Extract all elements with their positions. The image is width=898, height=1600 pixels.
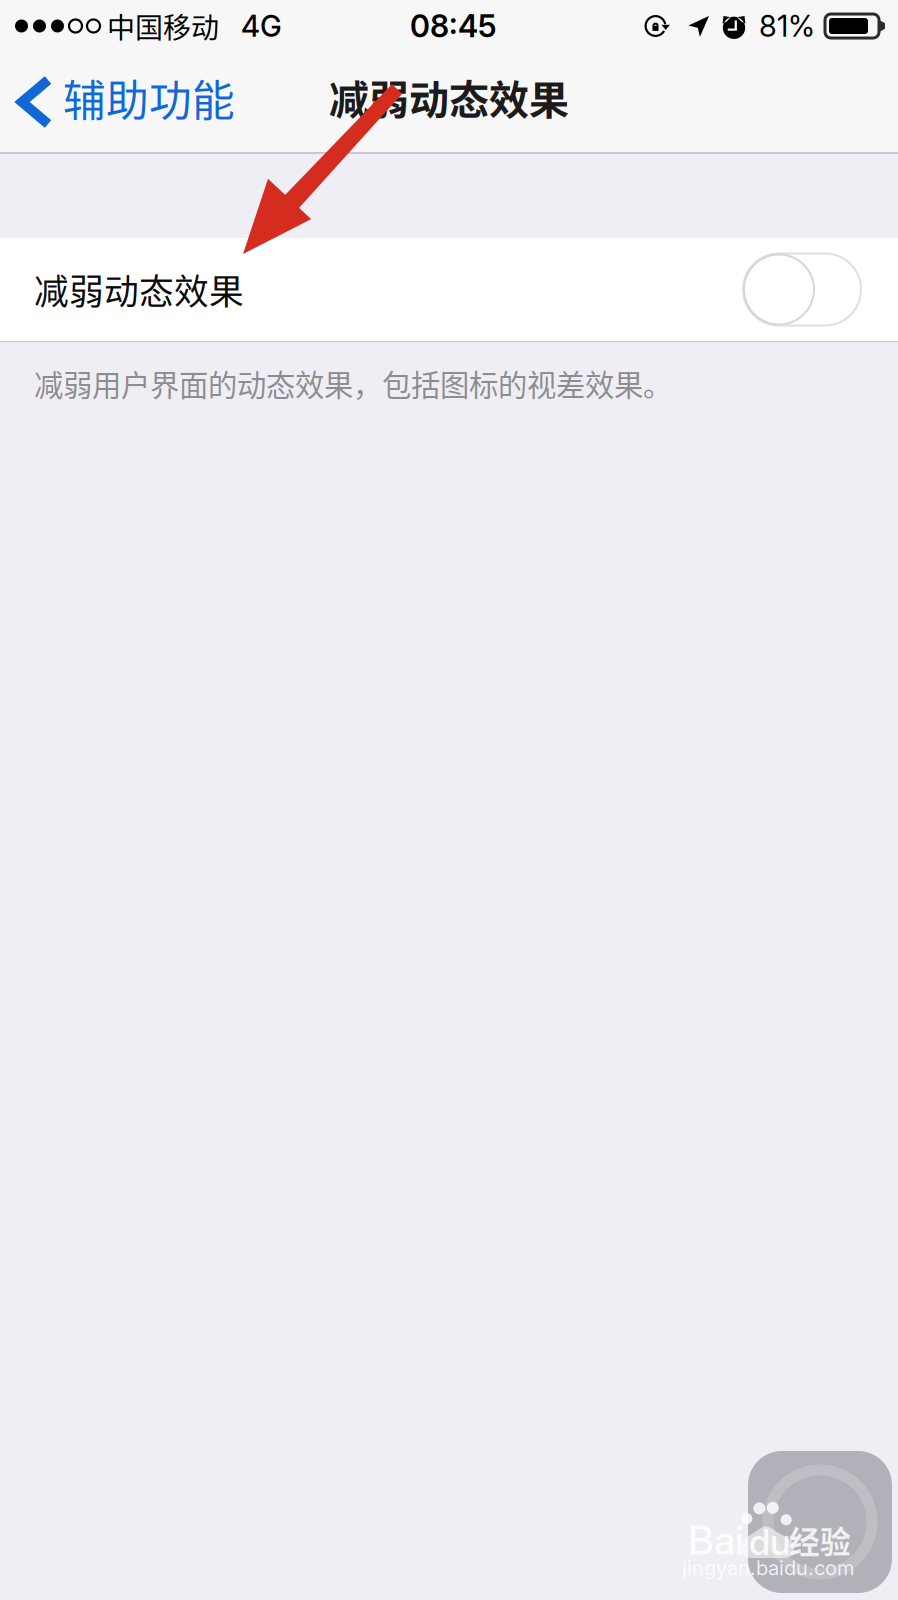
staticText: 经验 [789, 1518, 851, 1562]
button[interactable]: 减弱动态效果 [0, 238, 898, 341]
staticText: 减弱用户界面的动态效果，包括图标的视差效果。 [34, 362, 672, 404]
staticText: 减弱动态效果 [329, 68, 569, 126]
staticText: 4G [241, 8, 282, 44]
staticText: 08:45 [410, 7, 496, 44]
staticText: Bai [688, 1516, 744, 1564]
staticText: 辅助功能 [63, 67, 235, 129]
staticText: 81% [759, 8, 815, 44]
staticText: 减弱动态效果 [34, 264, 244, 315]
button[interactable]: 辅助功能 [0, 52, 253, 152]
staticText: du [749, 1520, 791, 1564]
staticText: 中国移动 [107, 6, 219, 46]
staticText: jingyan.baidu.com [682, 1556, 854, 1580]
